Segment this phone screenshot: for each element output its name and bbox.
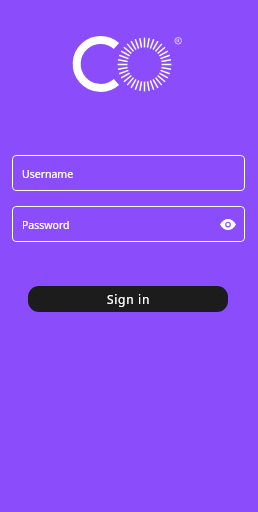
button[interactable]: Show password (218, 214, 238, 234)
staticText: Sign in (107, 291, 151, 307)
button[interactable]: Password (12, 206, 245, 242)
button[interactable]: Sign in (28, 286, 228, 312)
staticText: Username (22, 167, 74, 181)
button[interactable]: Username (12, 155, 245, 191)
staticText: Password (22, 218, 70, 232)
